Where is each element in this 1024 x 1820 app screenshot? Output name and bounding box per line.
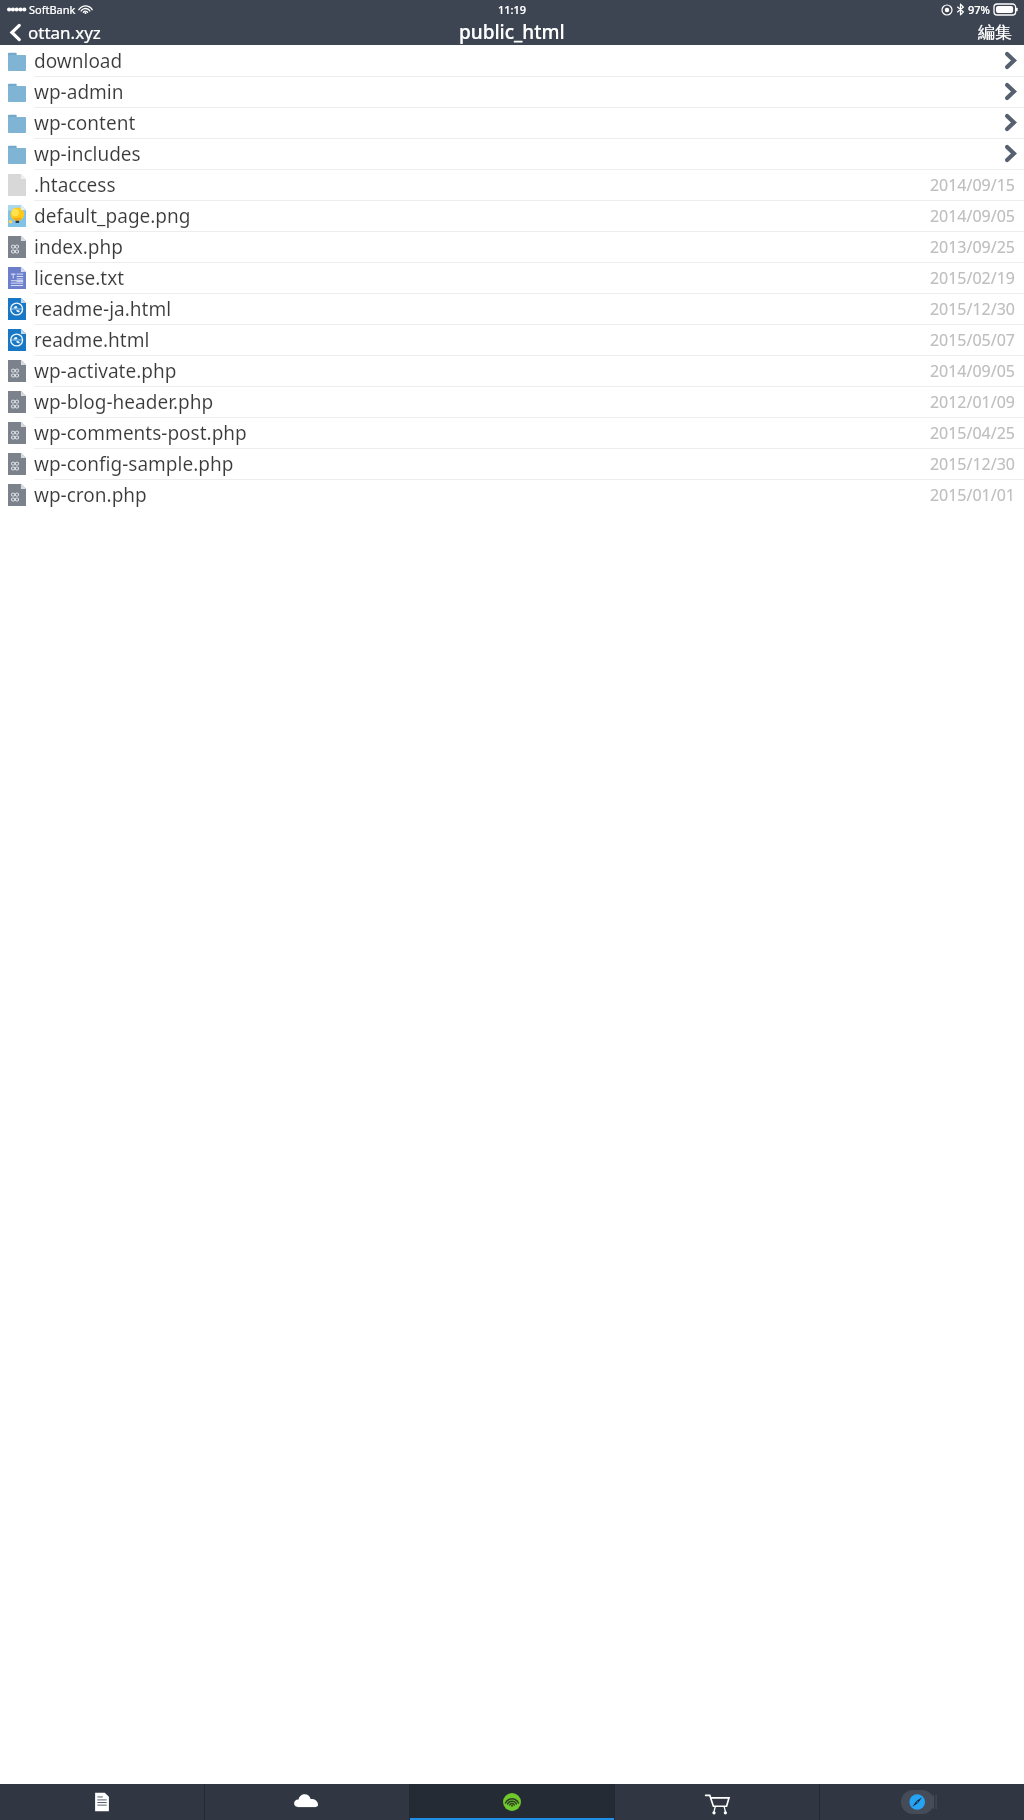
button[interactable]: wp-admin	[0, 76, 1024, 107]
button[interactable]: wp-activate.php	[0, 355, 1024, 386]
staticText: 2015/04/25	[929, 422, 1015, 444]
staticText: wp-includes	[34, 141, 1006, 167]
staticText: 2014/09/05	[929, 360, 1015, 382]
button[interactable]: Store	[615, 1784, 819, 1820]
staticText: SoftBank	[29, 2, 76, 17]
staticText: wp-admin	[34, 79, 1006, 105]
staticText: .htaccess	[34, 172, 929, 198]
staticText: 2015/12/30	[929, 298, 1015, 320]
button[interactable]: default_page.png	[0, 200, 1024, 231]
staticText: wp-content	[34, 110, 1006, 136]
staticText: 編集	[978, 22, 1012, 43]
other: Open folder	[1006, 84, 1015, 99]
staticText: public_html	[459, 19, 565, 45]
staticText: 2014/09/15	[929, 174, 1015, 196]
staticText: 2013/09/25	[929, 236, 1015, 258]
staticText: 2015/05/07	[929, 329, 1015, 351]
staticText: readme-ja.html	[34, 296, 929, 322]
button[interactable]: readme-ja.html	[0, 293, 1024, 324]
button[interactable]: 編集	[966, 19, 1024, 45]
staticText: wp-cron.php	[34, 482, 929, 508]
other: Open folder	[1006, 53, 1015, 68]
button[interactable]: Back	[0, 19, 111, 45]
staticText: download	[34, 48, 1006, 74]
staticText: default_page.png	[34, 203, 929, 229]
button[interactable]: download	[0, 45, 1024, 76]
staticText: 2014/09/05	[929, 205, 1015, 227]
button[interactable]: Files	[0, 1784, 204, 1820]
staticText: 2015/02/19	[929, 267, 1015, 289]
button[interactable]: index.php	[0, 231, 1024, 262]
staticText: wp-comments-post.php	[34, 420, 929, 446]
button[interactable]: wp-comments-post.php	[0, 417, 1024, 448]
button[interactable]: wp-cron.php	[0, 479, 1024, 510]
other: Open folder	[1006, 115, 1015, 130]
staticText: wp-blog-header.php	[34, 389, 929, 415]
button[interactable]: .htaccess	[0, 169, 1024, 200]
button[interactable]: wp-includes	[0, 138, 1024, 169]
button[interactable]: Browser	[820, 1784, 1024, 1820]
button[interactable]: readme.html	[0, 324, 1024, 355]
button[interactable]: wp-blog-header.php	[0, 386, 1024, 417]
staticText: wp-config-sample.php	[34, 451, 929, 477]
button[interactable]: wp-config-sample.php	[0, 448, 1024, 479]
button[interactable]: wp-content	[0, 107, 1024, 138]
other: Open folder	[1006, 146, 1015, 161]
staticText: ottan.xyz	[28, 21, 101, 44]
staticText: 2015/12/30	[929, 453, 1015, 475]
staticText: readme.html	[34, 327, 929, 353]
staticText: 11:19	[498, 2, 527, 17]
button[interactable]: license.txt	[0, 262, 1024, 293]
other: Back	[11, 24, 20, 41]
button[interactable]: Network	[410, 1784, 614, 1820]
staticText: wp-activate.php	[34, 358, 929, 384]
staticText: 2012/01/09	[929, 391, 1015, 413]
staticText: license.txt	[34, 265, 929, 291]
staticText: 97%	[968, 2, 990, 17]
staticText: 2015/01/01	[929, 484, 1015, 506]
button[interactable]: Cloud	[205, 1784, 409, 1820]
staticText: index.php	[34, 234, 929, 260]
